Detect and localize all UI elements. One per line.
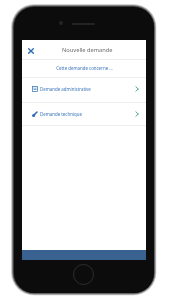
button[interactable]: Demande technique [22,102,146,126]
staticText: Demande technique [40,111,82,117]
button[interactable]: Demande administrative [22,77,146,101]
staticText: Cette demande concerne ... [56,65,113,71]
staticText: Nouvelle demande [62,46,113,54]
staticText: Demande administrative [40,86,91,92]
button[interactable]: Close [23,43,38,58]
